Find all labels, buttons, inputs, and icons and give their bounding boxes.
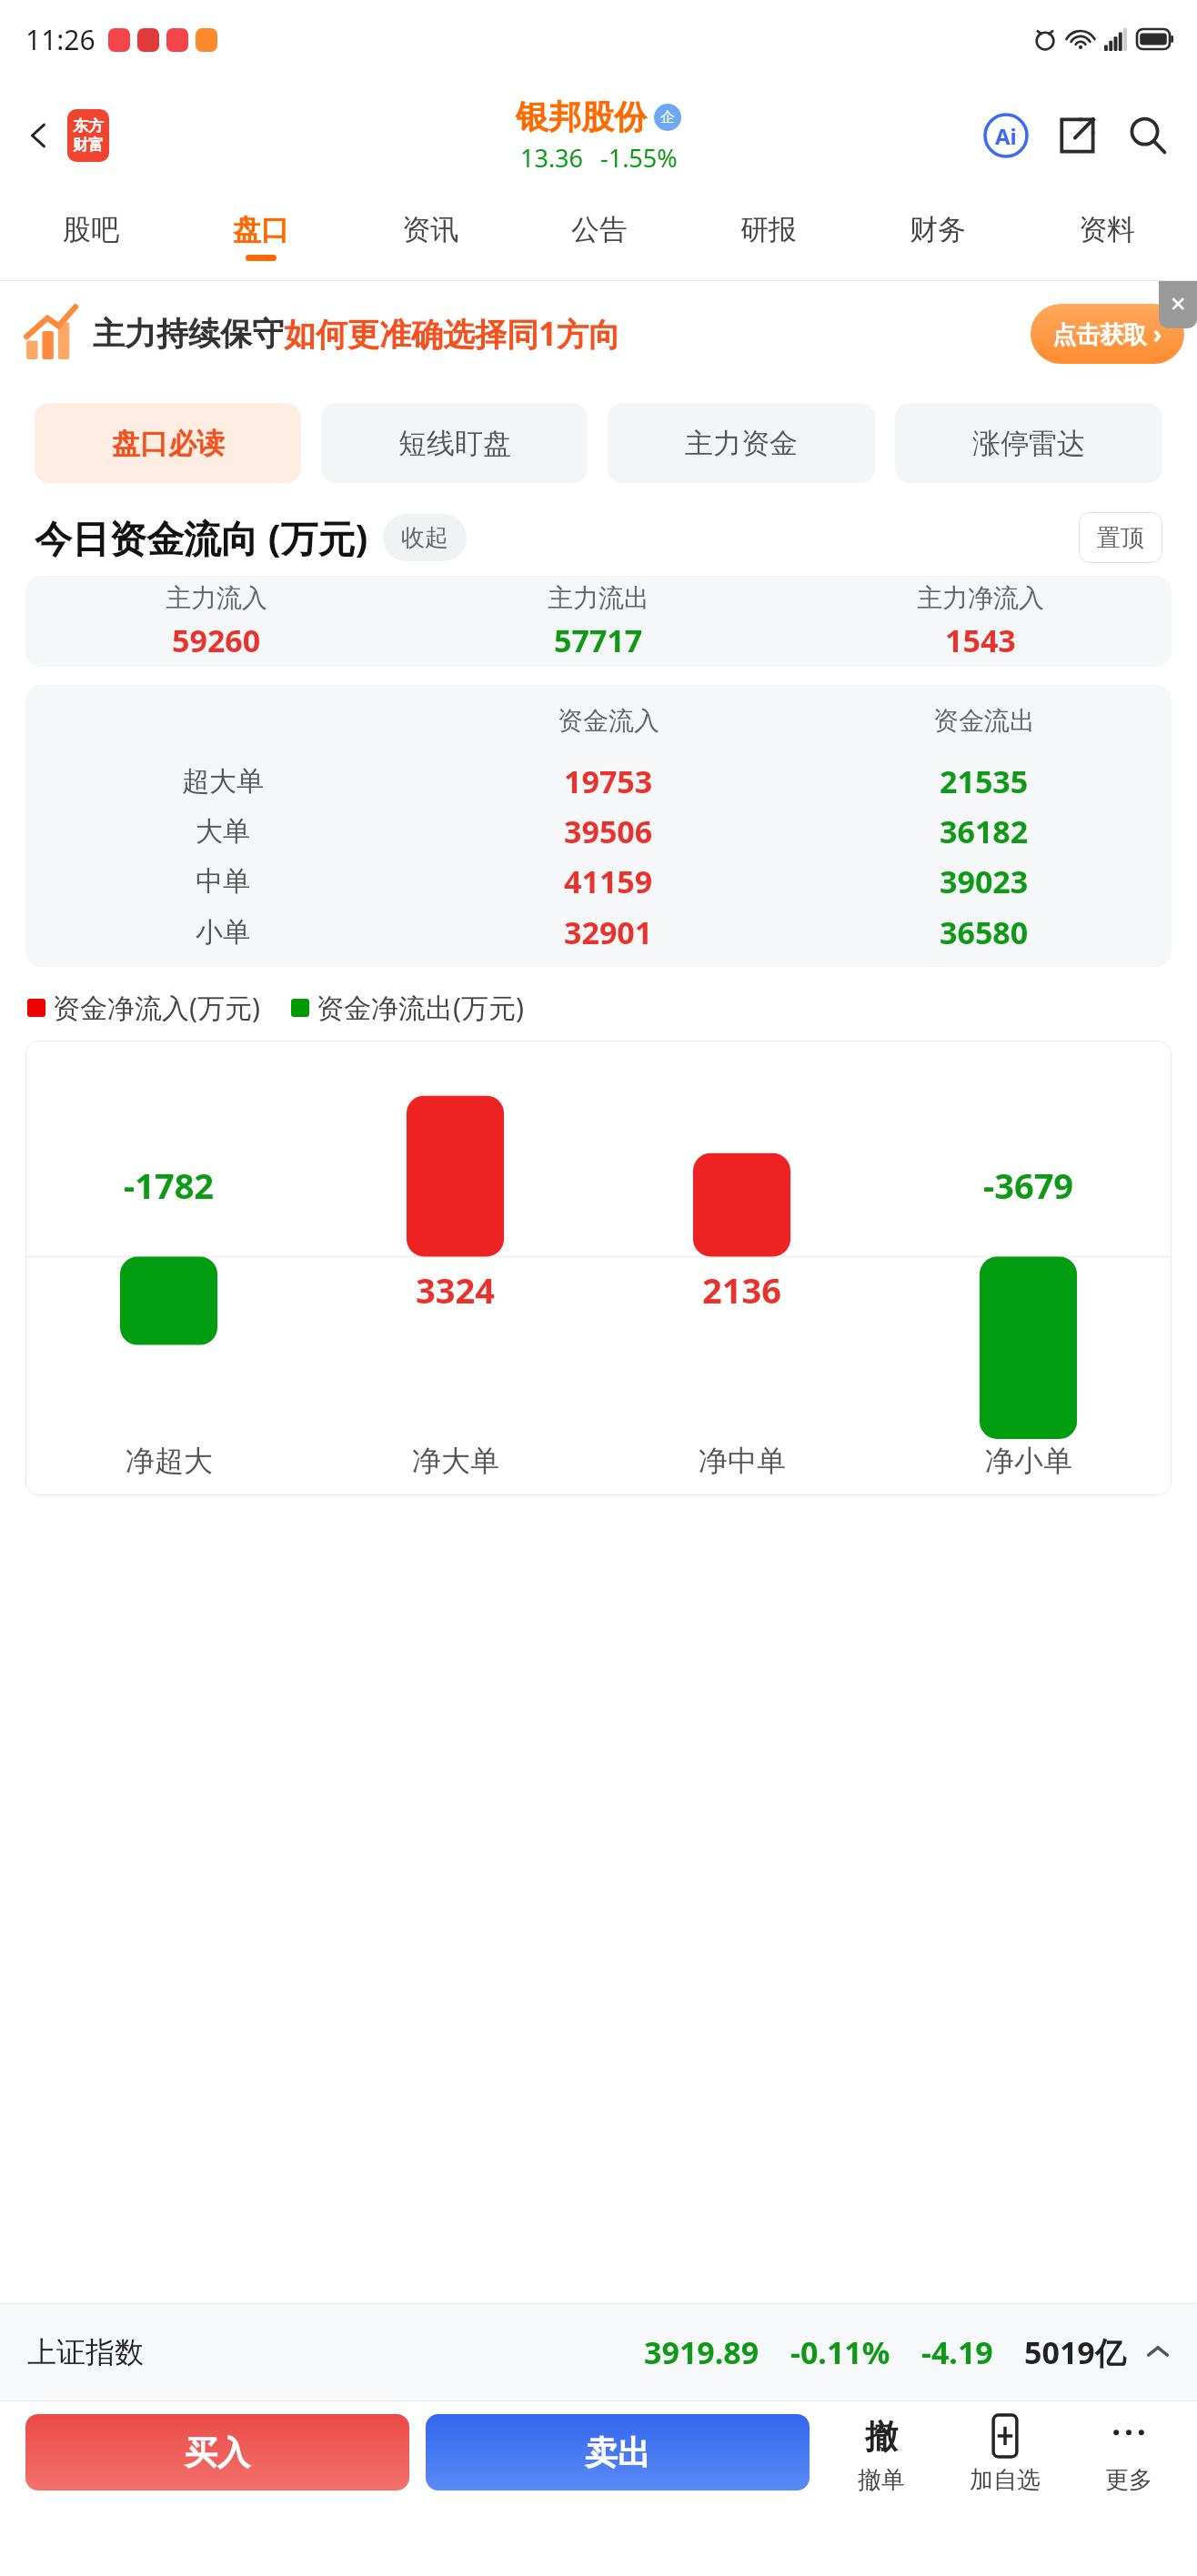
staticText: 公告 bbox=[571, 212, 628, 247]
button[interactable]: 收起 bbox=[383, 514, 467, 561]
staticText: 主力净流入 bbox=[917, 582, 1044, 614]
staticText: 39023 bbox=[940, 860, 1029, 902]
button[interactable]: 资料 bbox=[1022, 193, 1192, 280]
staticText: 36580 bbox=[940, 911, 1029, 953]
staticText: 超大单 bbox=[182, 764, 264, 799]
staticText: 上证指数 bbox=[27, 2334, 144, 2370]
staticText: 主力流入 bbox=[166, 582, 267, 614]
button[interactable]: Close ad bbox=[1159, 281, 1197, 328]
staticText: 点击获取 › bbox=[1052, 317, 1162, 350]
staticText: ✕ bbox=[1170, 293, 1187, 317]
staticText: 资金流出 bbox=[933, 705, 1035, 737]
staticText: 今日资金流向 (万元) bbox=[35, 512, 368, 563]
staticText: 1543 bbox=[945, 619, 1016, 661]
staticText: 11:26 bbox=[25, 21, 96, 58]
staticText: 41159 bbox=[564, 860, 653, 902]
button[interactable]: AI assistant bbox=[981, 110, 1031, 161]
staticText: -1.55% bbox=[600, 141, 678, 175]
staticText: 更多 bbox=[1105, 2465, 1152, 2495]
button[interactable]: 涨停雷达 bbox=[895, 403, 1162, 483]
staticText: 净超大 bbox=[126, 1443, 213, 1479]
staticText: 资料 bbox=[1079, 212, 1135, 247]
staticText: -1782 bbox=[124, 1162, 215, 1209]
staticText: 撤 bbox=[865, 2416, 898, 2457]
staticText: 短线盯盘 bbox=[398, 426, 511, 461]
staticText: 36182 bbox=[940, 810, 1029, 852]
button[interactable]: 研报 bbox=[684, 193, 853, 280]
staticText: 3919.89 bbox=[644, 2331, 759, 2373]
staticText: 如何更准确选择同1方向 bbox=[284, 312, 621, 356]
staticText: 财富 bbox=[73, 136, 104, 155]
button[interactable]: -1782 bbox=[25, 1041, 1172, 1495]
staticText: 主力持续保守 bbox=[93, 314, 284, 354]
staticText: 小单 bbox=[196, 915, 250, 950]
staticText: 收起 bbox=[401, 523, 448, 553]
button[interactable]: 更多 bbox=[1079, 2410, 1179, 2495]
staticText: -0.11% bbox=[790, 2331, 890, 2373]
staticText: 置顶 bbox=[1097, 523, 1144, 553]
staticText: 财务 bbox=[910, 212, 966, 247]
staticText: 主力资金 bbox=[685, 426, 798, 461]
staticText: 19753 bbox=[564, 760, 653, 802]
staticText: -4.19 bbox=[921, 2331, 993, 2373]
staticText: 卖出 bbox=[585, 2432, 650, 2473]
button[interactable]: Search bbox=[1122, 110, 1173, 161]
staticText: 资金流入 bbox=[558, 705, 659, 737]
button[interactable]: 买入 bbox=[25, 2414, 409, 2490]
staticText: 资讯 bbox=[402, 212, 458, 247]
button[interactable]: 财务 bbox=[853, 193, 1022, 280]
staticText: 59260 bbox=[172, 619, 261, 661]
staticText: 大单 bbox=[196, 814, 250, 849]
staticText: 中单 bbox=[196, 864, 250, 899]
button[interactable]: 主力流入 bbox=[25, 576, 1172, 667]
button[interactable]: 主力持续保守 bbox=[0, 281, 1197, 387]
button[interactable]: Back bbox=[15, 102, 118, 169]
staticText: 13.36 bbox=[520, 141, 584, 175]
staticText: 净小单 bbox=[985, 1443, 1072, 1479]
staticText: Ai bbox=[995, 121, 1017, 151]
button[interactable]: 置顶 bbox=[1079, 512, 1162, 563]
button[interactable]: 盘口必读 bbox=[35, 403, 301, 483]
staticText: 撤单 bbox=[858, 2465, 905, 2495]
staticText: 涨停雷达 bbox=[972, 426, 1085, 461]
button[interactable]: 资讯 bbox=[346, 193, 515, 280]
staticText: 2136 bbox=[702, 1266, 781, 1313]
button[interactable]: 盘口 bbox=[176, 193, 346, 280]
staticText: 净大单 bbox=[412, 1443, 499, 1479]
button[interactable]: 股吧 bbox=[5, 193, 176, 280]
staticText: 企 bbox=[660, 108, 675, 126]
button[interactable]: 短线盯盘 bbox=[321, 403, 588, 483]
button[interactable]: Share bbox=[1051, 110, 1102, 161]
button[interactable]: 点击获取 › bbox=[1031, 304, 1184, 364]
staticText: 主力流出 bbox=[548, 582, 649, 614]
staticText: 盘口 bbox=[233, 212, 289, 247]
staticText: 5019亿 bbox=[1024, 2331, 1126, 2373]
staticText: 研报 bbox=[740, 212, 797, 247]
button[interactable]: 主力资金 bbox=[608, 403, 875, 483]
button[interactable]: 上证指数 bbox=[0, 2304, 1197, 2400]
staticText: 3324 bbox=[416, 1266, 495, 1313]
staticText: 21535 bbox=[940, 760, 1029, 802]
staticText: 买入 bbox=[185, 2432, 250, 2473]
staticText: 32901 bbox=[564, 911, 653, 953]
staticText: 资金净流入(万元) bbox=[53, 989, 260, 1026]
button[interactable]: 卖出 bbox=[426, 2414, 810, 2490]
staticText: 盘口必读 bbox=[112, 426, 225, 461]
button[interactable]: 公告 bbox=[515, 193, 684, 280]
button[interactable]: 加自选 bbox=[955, 2410, 1055, 2495]
staticText: 东方 bbox=[73, 116, 104, 136]
button[interactable]: 资金流入 bbox=[25, 685, 1172, 967]
staticText: -3679 bbox=[983, 1162, 1074, 1209]
staticText: 39506 bbox=[564, 810, 653, 852]
staticText: 股吧 bbox=[63, 212, 119, 247]
staticText: 资金净流出(万元) bbox=[317, 989, 524, 1026]
staticText: 加自选 bbox=[970, 2465, 1041, 2495]
staticText: 净中单 bbox=[699, 1443, 786, 1479]
staticText: 57717 bbox=[554, 619, 643, 661]
button[interactable]: 撤 bbox=[831, 2410, 931, 2495]
staticText: 银邦股份 bbox=[516, 96, 647, 137]
